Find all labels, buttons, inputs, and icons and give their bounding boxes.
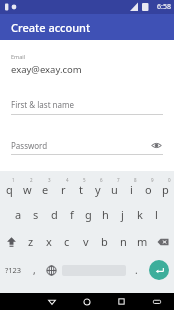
button[interactable]: j: [114, 201, 131, 228]
staticText: u: [111, 182, 118, 197]
button[interactable]: g: [80, 201, 97, 228]
button[interactable]: 0: [157, 174, 174, 201]
staticText: h: [102, 207, 109, 222]
staticText: 6:58: [157, 2, 171, 12]
staticText: p: [162, 182, 169, 197]
staticText: ?123: [5, 265, 22, 275]
button[interactable]: 3: [36, 174, 54, 201]
staticText: Password: [11, 140, 150, 151]
staticText: t: [79, 182, 83, 197]
button[interactable]: First & last name: [11, 99, 163, 115]
staticText: k: [137, 207, 143, 222]
staticText: z: [28, 234, 34, 249]
staticText: 5: [83, 177, 86, 183]
button[interactable]: 2: [18, 174, 36, 201]
button[interactable]: Home: [69, 293, 104, 310]
staticText: 6: [100, 177, 103, 183]
button[interactable]: f: [63, 201, 80, 228]
button[interactable]: Password: [11, 139, 163, 155]
button[interactable]: Shift: [0, 228, 22, 255]
button[interactable]: Email: [11, 53, 163, 76]
staticText: c: [64, 234, 70, 249]
button[interactable]: k: [131, 201, 148, 228]
button[interactable]: Enter: [149, 260, 169, 280]
staticText: 2: [30, 177, 33, 183]
button[interactable]: 9: [140, 174, 157, 201]
button[interactable]: s: [27, 201, 45, 228]
staticText: Email: [11, 53, 26, 60]
staticText: d: [51, 207, 58, 222]
staticText: q: [6, 182, 13, 197]
staticText: e: [42, 182, 49, 197]
button[interactable]: h: [97, 201, 114, 228]
button[interactable]: b: [95, 228, 114, 255]
staticText: x: [46, 234, 52, 249]
staticText: 4: [66, 177, 69, 183]
button[interactable]: m: [133, 228, 152, 255]
button[interactable]: 7: [106, 174, 123, 201]
staticText: i: [130, 182, 133, 197]
staticText: y: [95, 182, 101, 197]
staticText: .: [135, 263, 138, 277]
button[interactable]: 4: [54, 174, 72, 201]
staticText: a: [15, 207, 22, 222]
button[interactable]: Change language: [42, 255, 60, 285]
button[interactable]: l: [148, 201, 165, 228]
button[interactable]: n: [114, 228, 133, 255]
button[interactable]: ?123: [0, 255, 26, 285]
staticText: First & last name: [11, 99, 75, 110]
button[interactable]: .: [128, 255, 144, 285]
button[interactable]: Recent apps: [104, 293, 139, 310]
staticText: b: [101, 234, 108, 249]
staticText: exay@exay.com: [11, 63, 82, 76]
staticText: 3: [48, 177, 51, 183]
button[interactable]: ,: [26, 255, 42, 285]
staticText: w: [23, 182, 32, 197]
button[interactable]: c: [58, 228, 76, 255]
staticText: v: [83, 234, 89, 249]
staticText: 7: [117, 177, 120, 183]
staticText: j: [121, 207, 124, 222]
staticText: s: [33, 207, 39, 222]
staticText: ,: [33, 263, 36, 277]
staticText: r: [61, 182, 66, 197]
button[interactable]: 6: [89, 174, 106, 201]
staticText: m: [137, 234, 148, 249]
button[interactable]: 1: [0, 174, 18, 201]
staticText: 8: [134, 177, 137, 183]
staticText: o: [145, 182, 152, 197]
button[interactable]: 8: [123, 174, 140, 201]
button[interactable]: d: [45, 201, 63, 228]
staticText: 9: [151, 177, 154, 183]
button[interactable]: z: [22, 228, 40, 255]
staticText: l: [155, 207, 158, 222]
button[interactable]: 5: [72, 174, 89, 201]
button[interactable]: Show password: [150, 139, 163, 152]
staticText: 0: [168, 177, 171, 183]
staticText: n: [120, 234, 127, 249]
button[interactable]: Backspace: [152, 228, 174, 255]
button[interactable]: v: [76, 228, 95, 255]
button[interactable]: x: [40, 228, 58, 255]
button[interactable]: a: [9, 201, 27, 228]
staticText: g: [85, 207, 92, 222]
staticText: Create account: [11, 20, 91, 35]
staticText: 1: [12, 177, 15, 183]
staticText: f: [70, 207, 74, 222]
button[interactable]: Back: [34, 293, 69, 310]
